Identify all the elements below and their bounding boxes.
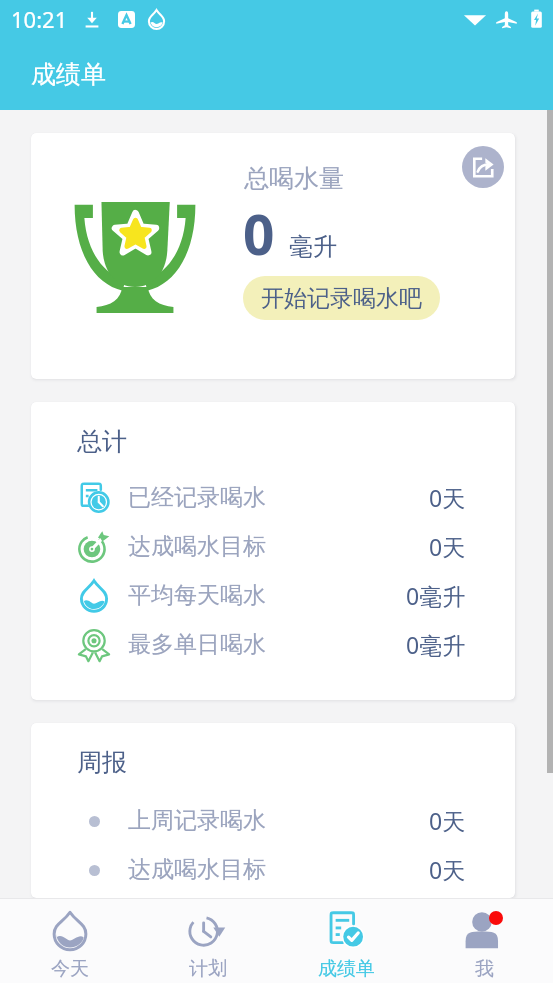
button[interactable]: 今天	[0, 899, 139, 983]
staticText: 成绩单	[318, 957, 375, 981]
staticText: 0天	[429, 854, 466, 885]
button[interactable]: 上周记录喝水	[77, 796, 466, 845]
button[interactable]: 已经记录喝水	[77, 473, 466, 522]
button[interactable]: 我	[415, 899, 553, 983]
staticText: 开始记录喝水吧	[261, 284, 422, 313]
staticText: 计划	[189, 957, 227, 981]
staticText: 今天	[51, 957, 89, 981]
staticText: 0天	[429, 805, 466, 836]
staticText: 0	[243, 196, 275, 271]
button[interactable]: 成绩单	[277, 899, 415, 983]
staticText: 成绩单	[31, 59, 106, 90]
staticText: 达成喝水目标	[128, 532, 266, 561]
staticText: 我	[475, 957, 494, 981]
staticText: 已经记录喝水	[128, 483, 266, 512]
button[interactable]: 最多单日喝水	[77, 620, 466, 669]
button[interactable]: 达成喝水目标	[77, 522, 466, 571]
staticText: 周报	[77, 747, 127, 778]
button[interactable]: 平均每天喝水	[77, 571, 466, 620]
staticText: 0毫升	[406, 629, 466, 660]
button[interactable]: 达成喝水目标	[77, 845, 466, 894]
staticText: 平均每天喝水	[128, 581, 266, 610]
staticText: 0毫升	[406, 580, 466, 611]
staticText: 最多单日喝水	[128, 630, 266, 659]
staticText: 总计	[77, 426, 127, 457]
staticText: 达成喝水目标	[128, 855, 266, 884]
staticText: 10:21	[11, 4, 68, 34]
staticText: 0天	[429, 531, 466, 562]
button[interactable]: 开始记录喝水吧	[243, 276, 440, 320]
staticText: 0天	[429, 482, 466, 513]
button[interactable]: 分享	[462, 146, 504, 188]
staticText: 上周记录喝水	[128, 806, 266, 835]
button[interactable]: 计划	[139, 899, 277, 983]
staticText: 毫升	[289, 232, 337, 262]
staticText: 总喝水量	[244, 163, 344, 194]
